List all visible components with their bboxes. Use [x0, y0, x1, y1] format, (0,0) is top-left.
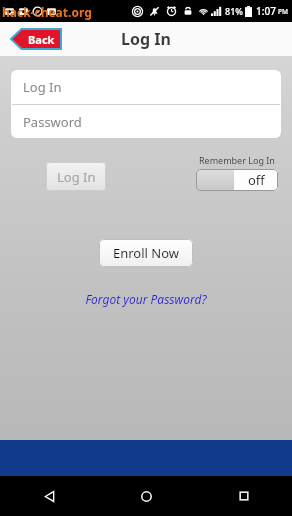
staticText: Log In — [121, 28, 171, 50]
button[interactable]: Log In — [46, 162, 106, 191]
staticText: 81% — [225, 5, 243, 17]
button[interactable]: Password — [11, 105, 281, 138]
staticText: PM — [278, 7, 288, 16]
staticText: Password — [23, 113, 82, 131]
button[interactable]: Log In — [11, 70, 281, 104]
staticText: Enroll Now — [113, 244, 180, 262]
staticText: Remember Log In — [199, 154, 275, 166]
button[interactable]: Enroll Now — [99, 239, 193, 267]
button[interactable]: Remember Log In toggle, off — [196, 169, 278, 191]
staticText: Log In — [23, 78, 62, 96]
staticText: Back — [28, 32, 55, 47]
staticText: off — [248, 171, 265, 189]
button[interactable]: Home — [98, 476, 195, 516]
staticText: 1:07 — [256, 4, 276, 18]
button[interactable]: Back — [11, 29, 61, 49]
button[interactable]: Recent apps — [195, 476, 292, 516]
button[interactable]: Forgot your Password? — [77, 287, 215, 311]
staticText: Log In — [57, 168, 96, 186]
button[interactable]: Back — [0, 476, 98, 516]
staticText: hack-cheat.org — [2, 4, 92, 20]
staticText: Forgot your Password? — [85, 291, 207, 307]
